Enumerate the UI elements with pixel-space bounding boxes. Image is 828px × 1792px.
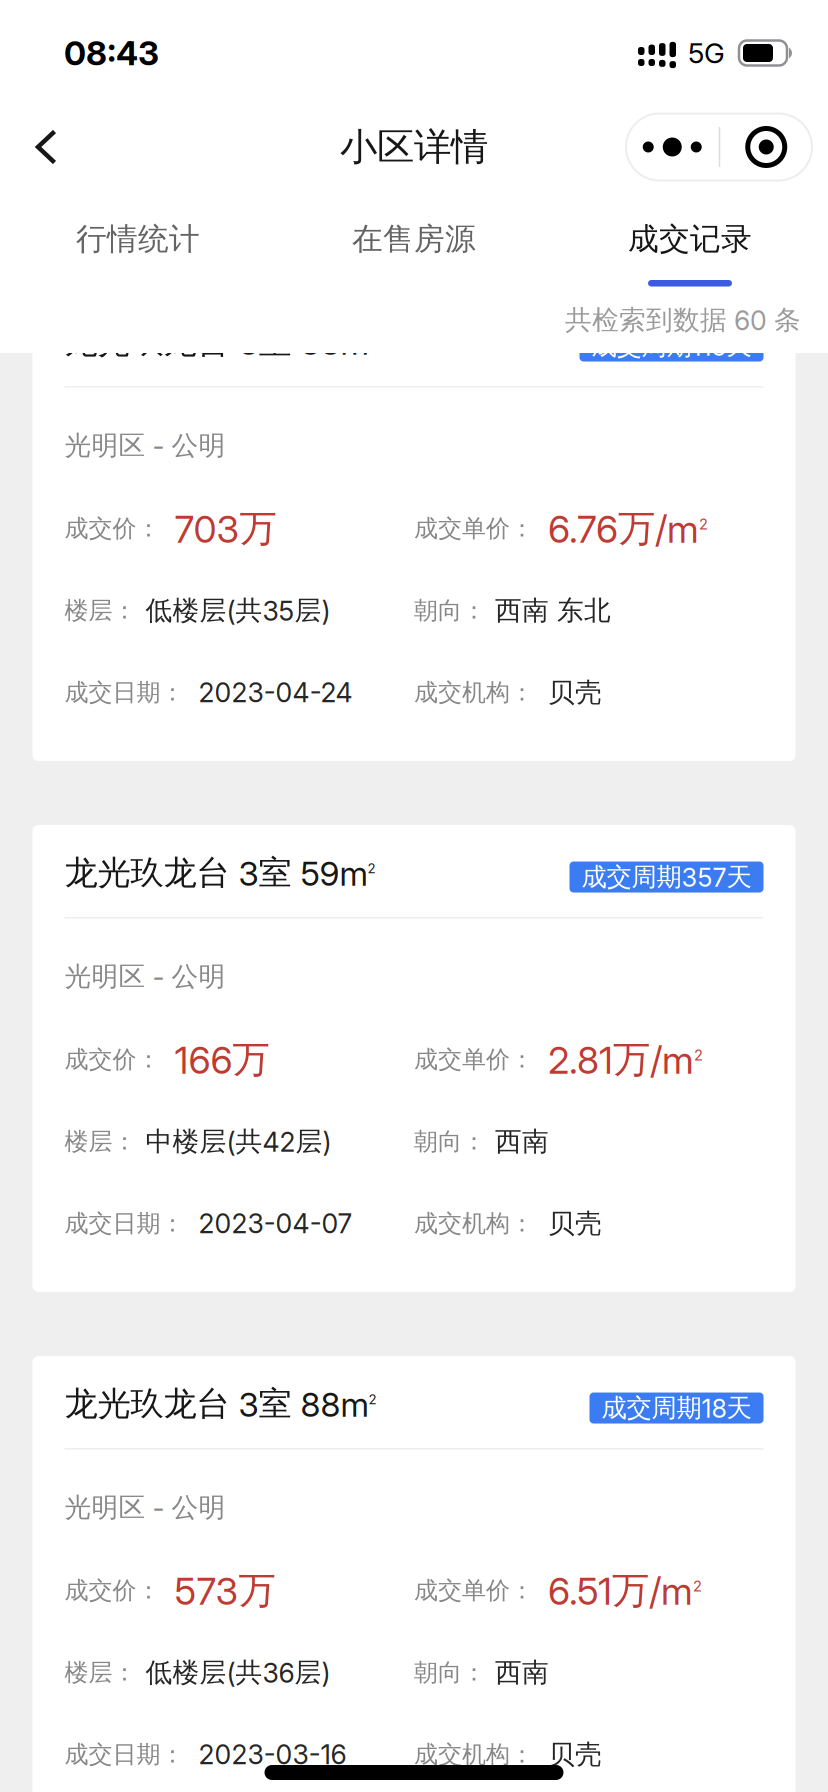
staticText: 2023-03-16 xyxy=(198,1738,346,1771)
staticText: 小区详情 xyxy=(340,123,488,170)
staticText: 楼层： xyxy=(64,1657,136,1688)
button[interactable]: 龙光玖龙台 3室 88m2 xyxy=(32,1356,795,1792)
staticText: 朝向： xyxy=(414,1657,486,1688)
staticText: 成交单价： xyxy=(414,513,534,544)
button[interactable]: 更多 xyxy=(626,113,812,180)
staticText: 龙光玖龙台 3室 88m2 xyxy=(64,1383,376,1424)
staticText: 2.81万/m2 xyxy=(548,1037,703,1082)
button[interactable]: 行情统计 xyxy=(0,188,276,309)
staticText: 703万 xyxy=(174,505,276,552)
staticText: 5G xyxy=(688,36,725,70)
staticText: 光明区 - 公明 xyxy=(64,960,225,993)
staticText: 在售房源 xyxy=(352,220,476,258)
staticText: 成交价： xyxy=(64,1575,160,1606)
staticText: 成交周期115天 xyxy=(591,330,751,362)
staticText: 成交单价： xyxy=(414,1044,534,1075)
staticText: 成交周期357天 xyxy=(581,861,751,893)
staticText: 光明区 - 公明 xyxy=(64,429,225,462)
staticText: 成交日期： xyxy=(64,1739,184,1770)
staticText: 成交价： xyxy=(64,1044,160,1075)
staticText: 166万 xyxy=(174,1036,269,1083)
staticText: 成交机构： xyxy=(414,1208,534,1239)
staticText: 光明区 - 公明 xyxy=(64,1491,225,1524)
staticText: 成交周期18天 xyxy=(601,1392,751,1424)
staticText: 西南 东北 xyxy=(495,594,611,627)
staticText: 贝壳 xyxy=(548,1207,602,1240)
staticText: 成交机构： xyxy=(414,1739,534,1770)
staticText: 6.76万/m2 xyxy=(548,506,708,551)
staticText: 低楼层(共35层) xyxy=(145,594,330,627)
staticText: 成交日期： xyxy=(64,677,184,708)
staticText: 贝壳 xyxy=(548,676,602,709)
button[interactable]: 龙光玖龙台 3室 88m2 xyxy=(32,294,795,761)
staticText: 08:43 xyxy=(64,33,159,73)
staticText: 2023-04-07 xyxy=(198,1207,352,1240)
staticText: 朝向： xyxy=(414,595,486,626)
staticText: 成交单价： xyxy=(414,1575,534,1606)
staticText: 573万 xyxy=(174,1567,275,1614)
button[interactable]: 返回 xyxy=(8,103,84,191)
button[interactable]: 在售房源 xyxy=(276,188,552,309)
staticText: 西南 xyxy=(495,1125,549,1158)
staticText: 中楼层(共42层) xyxy=(145,1125,331,1158)
staticText: 低楼层(共36层) xyxy=(145,1656,330,1689)
staticText: 成交价： xyxy=(64,513,160,544)
staticText: 楼层： xyxy=(64,1126,136,1157)
button[interactable]: 龙光玖龙台 3室 59m2 xyxy=(32,825,795,1292)
staticText: 成交日期： xyxy=(64,1208,184,1239)
staticText: 成交机构： xyxy=(414,677,534,708)
staticText: 西南 xyxy=(495,1656,549,1689)
staticText: 楼层： xyxy=(64,595,136,626)
button[interactable]: 成交记录 xyxy=(552,188,828,309)
staticText: 2023-04-24 xyxy=(198,676,352,709)
staticText: 行情统计 xyxy=(76,220,200,258)
staticText: 6.51万/m2 xyxy=(548,1568,702,1613)
staticText: 共检索到数据 60 条 xyxy=(565,303,801,337)
staticText: 贝壳 xyxy=(548,1738,602,1771)
staticText: 龙光玖龙台 3室 88m2 xyxy=(64,321,376,362)
staticText: 成交记录 xyxy=(628,220,752,258)
staticText: 龙光玖龙台 3室 59m2 xyxy=(64,852,375,893)
staticText: 朝向： xyxy=(414,1126,486,1157)
